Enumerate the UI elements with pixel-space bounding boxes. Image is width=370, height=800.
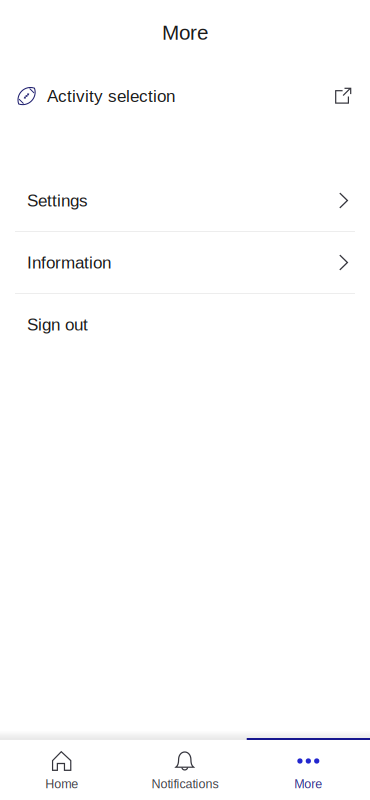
button[interactable]: Settings bbox=[0, 170, 370, 231]
button[interactable]: Activity selection bbox=[0, 80, 370, 112]
button[interactable]: More bbox=[247, 740, 370, 800]
staticText: Notifications bbox=[151, 777, 218, 791]
staticText: Sign out bbox=[27, 315, 88, 334]
button[interactable]: Home bbox=[0, 740, 123, 800]
staticText: More bbox=[294, 777, 322, 791]
staticText: Home bbox=[45, 777, 78, 791]
staticText: Activity selection bbox=[47, 86, 175, 106]
staticText: More bbox=[162, 21, 208, 44]
button[interactable]: Sign out bbox=[0, 294, 370, 355]
staticText: Settings bbox=[27, 191, 88, 210]
button[interactable]: Notifications bbox=[123, 740, 247, 800]
button[interactable]: Information bbox=[0, 232, 370, 293]
staticText: Information bbox=[27, 253, 111, 272]
